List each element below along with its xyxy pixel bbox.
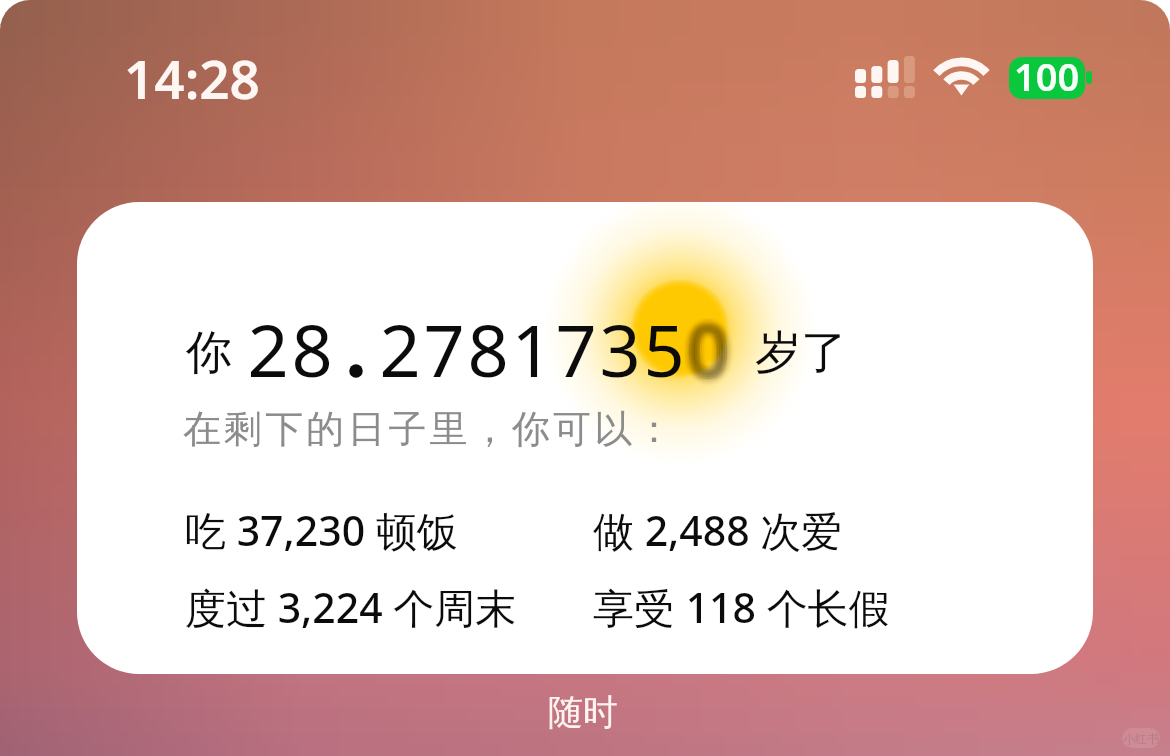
staticText: 0 [692,307,734,405]
staticText: 0 [694,309,736,407]
staticText: 0 [694,293,736,391]
staticText: 0 [690,293,732,391]
staticText: 0 [694,302,736,400]
staticText: 0 [679,302,721,400]
staticText: 0 [696,305,738,403]
staticText: 0 [690,300,732,398]
staticText: 0 [696,295,738,393]
staticText: 0 [680,293,722,391]
staticText: 0 [694,307,736,405]
staticText: 0 [684,300,726,398]
staticText: 0 [689,293,731,391]
staticText: 0 [679,298,721,396]
staticText: 0 [685,309,727,407]
staticText: 吃 37,230 顿饭 [185,502,458,558]
staticText: 0 [692,298,734,396]
staticText: 0 [689,302,731,400]
staticText: 0 [682,300,724,398]
staticText: 0 [682,292,724,390]
staticText: 0 [685,292,727,390]
staticText: 0 [684,298,726,396]
staticText: 0 [689,305,731,403]
staticText: 0 [682,303,724,401]
staticText: 0 [682,307,724,405]
staticText: 0 [682,305,724,403]
staticText: 0 [682,309,724,407]
staticText: 0 [685,297,727,395]
staticText: 0 [692,302,734,400]
staticText: 0 [680,307,722,405]
staticText: 0 [694,295,736,393]
staticText: 0 [694,298,736,396]
staticText: 2 [247,300,289,398]
button[interactable]: 你 [77,202,1093,674]
staticText: 0 [692,303,734,401]
staticText: 0 [684,307,726,405]
staticText: 0 [690,295,732,393]
staticText: 8 [467,300,509,398]
staticText: 0 [687,302,729,400]
staticText: 0 [694,300,736,398]
staticText: 0 [680,292,722,390]
staticText: 0 [679,293,721,391]
staticText: 0 [685,298,727,396]
staticText: 0 [687,297,729,395]
staticText: 0 [685,295,727,393]
staticText: 你 [186,324,232,382]
staticText: 0 [692,295,734,393]
staticText: 0 [684,293,726,391]
button[interactable]: 随时 [518,686,648,738]
staticText: 0 [679,295,721,393]
staticText: 0 [684,309,726,407]
staticText: 0 [692,292,734,390]
staticText: 0 [687,298,729,396]
staticText: 100 [1014,57,1080,92]
staticText: 0 [694,305,736,403]
staticText: 0 [682,298,724,396]
staticText: 0 [692,305,734,403]
staticText: 0 [680,305,722,403]
staticText: 0 [690,298,732,396]
staticText: 0 [685,302,727,400]
staticText: 享受 118 个长假 [593,579,890,635]
staticText: 0 [682,297,724,395]
staticText: 0 [690,302,732,400]
staticText: 0 [685,305,727,403]
staticText: 0 [684,305,726,403]
staticText: 0 [685,307,727,405]
staticText: 0 [684,302,726,400]
staticText: 0 [679,300,721,398]
staticText: 0 [682,293,724,391]
staticText: 0 [689,297,731,395]
staticText: 0 [690,292,732,390]
staticText: 0 [696,298,738,396]
staticText: 0 [692,300,734,398]
staticText: 0 [689,303,731,401]
staticText: 0 [692,297,734,395]
staticText: 0 [679,297,721,395]
staticText: 0 [690,309,732,407]
staticText: 0 [696,302,738,400]
staticText: 0 [679,307,721,405]
staticText: 1 [511,300,553,398]
staticText: 0 [684,297,726,395]
staticText: 0 [690,307,732,405]
staticText: 0 [685,303,727,401]
staticText: 0 [684,292,726,390]
staticText: 0 [696,303,738,401]
staticText: 0 [684,303,726,401]
staticText: 0 [687,307,729,405]
staticText: 3 [599,300,641,398]
staticText: 0 [694,297,736,395]
staticText: 0 [687,305,729,403]
staticText: 0 [694,292,736,390]
staticText: 0 [685,293,727,391]
staticText: 0 [687,293,729,391]
staticText: 0 [682,295,724,393]
staticText: 0 [690,303,732,401]
staticText: 0 [687,303,729,401]
staticText: 0 [687,292,729,390]
staticText: 0 [696,293,738,391]
staticText: 0 [680,303,722,401]
staticText: 0 [689,309,731,407]
